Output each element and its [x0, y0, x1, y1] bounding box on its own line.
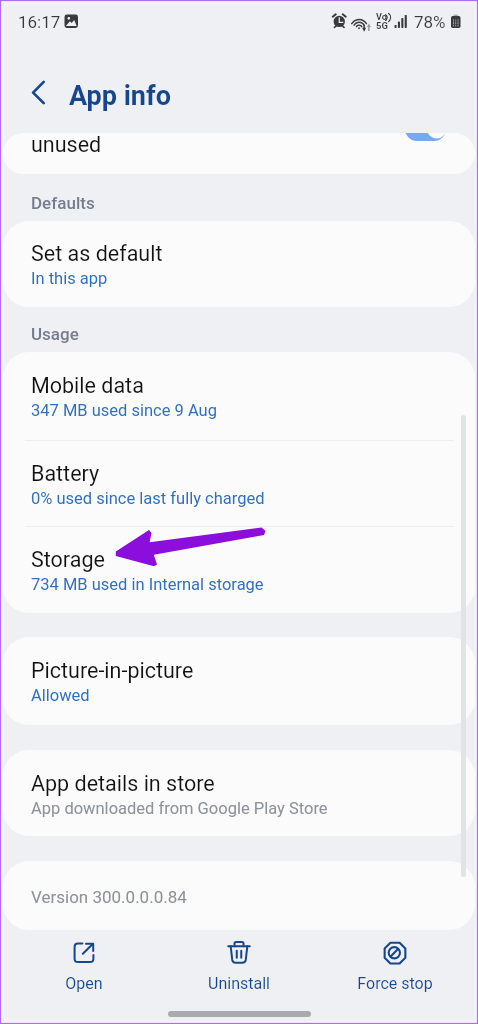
button[interactable]: Open	[14, 934, 154, 998]
staticText: 0% used since last fully charged	[31, 489, 265, 508]
staticText: Battery	[31, 461, 100, 486]
button[interactable]: unused	[3, 133, 475, 174]
staticText: Allowed	[31, 686, 90, 705]
staticText: Version 300.0.0.0.84	[31, 887, 187, 907]
button[interactable]: Picture-in-picture	[3, 637, 475, 724]
staticText: App downloaded from Google Play Store	[31, 799, 328, 818]
staticText: Open	[14, 974, 154, 996]
button[interactable]: Battery	[3, 440, 475, 527]
staticText: Uninstall	[169, 974, 309, 996]
staticText: In this app	[31, 269, 108, 288]
staticText: 78%	[414, 12, 446, 32]
button[interactable]: App details in store	[3, 750, 475, 836]
staticText: Set as default	[31, 241, 163, 266]
button[interactable]: Set as default	[3, 221, 475, 307]
staticText: 347 MB used since 9 Aug	[31, 401, 217, 420]
button[interactable]: Storage	[3, 526, 475, 613]
staticText: Usage	[31, 324, 79, 344]
staticText: App details in store	[31, 771, 215, 796]
staticText: unused	[31, 133, 102, 157]
staticText: 16:17	[18, 12, 61, 32]
staticText: Vo	[376, 12, 387, 23]
staticText: Force stop	[325, 974, 465, 996]
button[interactable]: Mobile data	[3, 352, 475, 439]
staticText: 734 MB used in Internal storage	[31, 575, 264, 594]
button[interactable]: Back	[20, 71, 64, 115]
staticText: Storage	[31, 547, 105, 572]
staticText: Mobile data	[31, 373, 144, 398]
staticText: Picture-in-picture	[31, 658, 194, 683]
button[interactable]: Force stop	[325, 934, 465, 998]
staticText: Defaults	[31, 193, 95, 213]
button[interactable]: Uninstall	[169, 934, 309, 998]
staticText: App info	[69, 80, 171, 112]
staticText: 5G	[376, 20, 388, 31]
